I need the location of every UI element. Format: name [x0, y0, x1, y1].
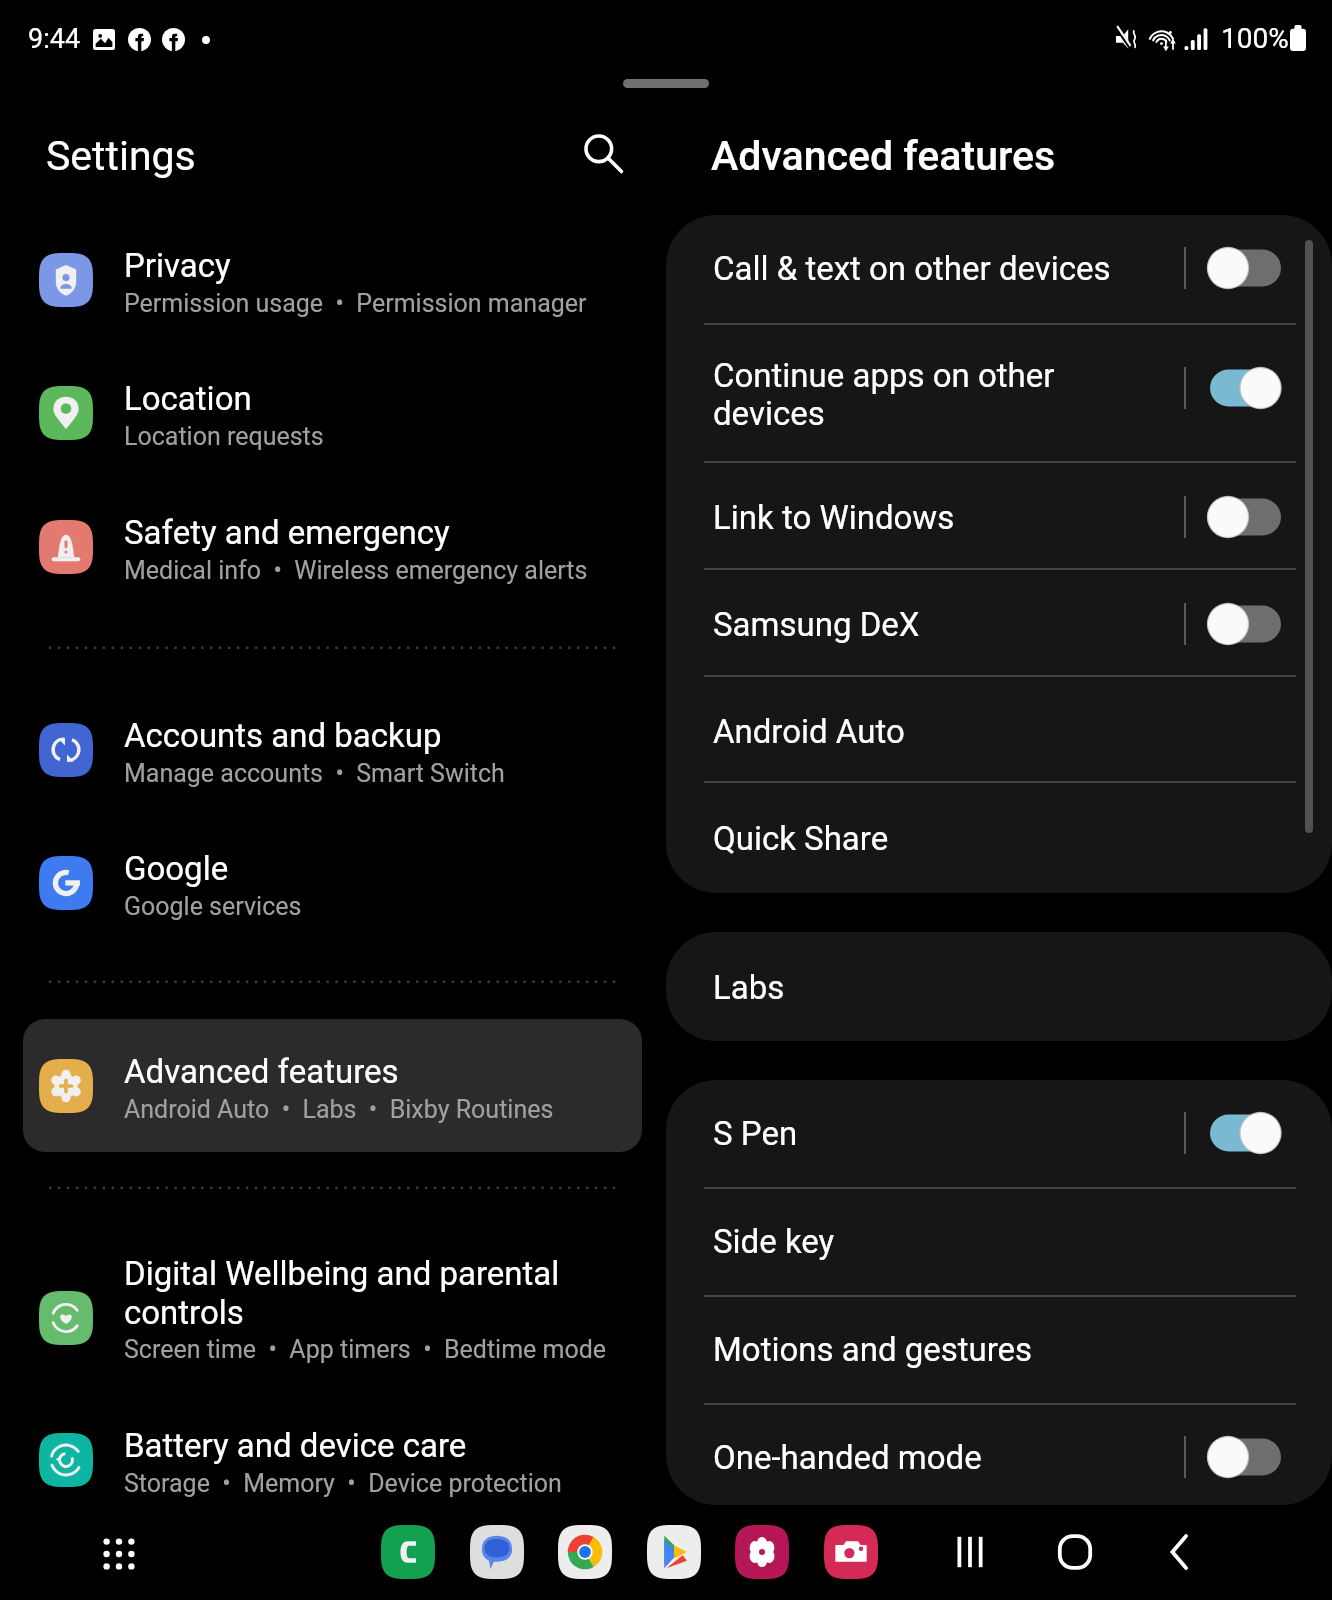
staticText: Safety and emergency	[124, 513, 450, 552]
staticText: S Pen	[713, 1114, 798, 1153]
staticText: Google services	[124, 892, 302, 921]
staticText: Samsung DeX	[713, 605, 920, 644]
button[interactable]	[824, 1525, 878, 1579]
staticText: Battery and device care	[124, 1426, 467, 1465]
staticText: Location requests	[124, 422, 324, 451]
staticText: 100%	[1221, 22, 1289, 55]
button[interactable]: Google	[0, 817, 666, 949]
staticText: Labs	[713, 968, 785, 1007]
staticText: Quick Share	[713, 819, 889, 858]
staticText: Android Auto	[713, 712, 905, 751]
staticText: controls	[124, 1293, 244, 1332]
button[interactable]: Search	[571, 121, 635, 185]
staticText: Privacy	[124, 246, 231, 285]
staticText: Storage • Memory • Device protection	[124, 1469, 562, 1498]
button[interactable]: Off	[1206, 242, 1284, 294]
staticText: Advanced features	[124, 1052, 399, 1091]
button[interactable]: Advanced features	[23, 1019, 642, 1152]
staticText: devices	[713, 394, 825, 433]
button[interactable]: Safety and emergency	[0, 481, 666, 613]
button[interactable]: Back	[1152, 1524, 1208, 1580]
button[interactable]: Samsung DeX	[666, 570, 1332, 678]
button[interactable]: On	[1206, 1107, 1284, 1159]
button[interactable]: Side key	[666, 1188, 1332, 1296]
staticText: Call & text on other devices	[713, 249, 1111, 288]
staticText: 9:44	[28, 23, 81, 55]
button[interactable]: Accounts and backup	[0, 684, 666, 816]
button[interactable]	[647, 1525, 701, 1579]
button[interactable]: Android Auto	[666, 678, 1332, 786]
button[interactable]: On	[1206, 362, 1284, 414]
button[interactable]: All apps	[91, 1526, 147, 1582]
button[interactable]: Location	[0, 347, 666, 479]
button[interactable]: Home	[1047, 1524, 1103, 1580]
button[interactable]: Continue apps on other	[666, 320, 1332, 456]
button[interactable]: Battery and device care	[0, 1394, 666, 1526]
button[interactable]: Call & text on other devices	[666, 214, 1332, 322]
button[interactable]: Off	[1206, 491, 1284, 543]
staticText: Google	[124, 849, 229, 888]
staticText: Link to Windows	[713, 498, 955, 537]
button[interactable]: S Pen	[666, 1079, 1332, 1187]
staticText: Android Auto • Labs • Bixby Routines	[124, 1095, 554, 1124]
staticText: Continue apps on other	[713, 356, 1055, 395]
button[interactable]	[381, 1525, 435, 1579]
staticText: Side key	[713, 1222, 835, 1261]
staticText: Settings	[46, 132, 196, 180]
staticText: Location	[124, 379, 252, 418]
button[interactable]	[558, 1525, 612, 1579]
staticText: Accounts and backup	[124, 716, 442, 755]
staticText: Permission usage • Permission manager	[124, 289, 587, 318]
button[interactable]: Motions and gestures	[666, 1296, 1332, 1404]
staticText: Digital Wellbeing and parental	[124, 1254, 560, 1293]
button[interactable]: One-handed mode	[666, 1403, 1332, 1511]
button[interactable]: Labs	[666, 934, 1332, 1042]
button[interactable]: Link to Windows	[666, 463, 1332, 571]
staticText: Advanced features	[711, 132, 1056, 180]
button[interactable]	[470, 1525, 524, 1579]
staticText: Motions and gestures	[713, 1330, 1033, 1369]
button[interactable]: Digital Wellbeing and parental	[0, 1232, 666, 1392]
staticText: Medical info • Wireless emergency alerts	[124, 556, 588, 585]
staticText: Manage accounts • Smart Switch	[124, 759, 505, 788]
button[interactable]: Privacy	[0, 214, 666, 346]
button[interactable]: Recents	[942, 1524, 998, 1580]
button[interactable]: Off	[1206, 598, 1284, 650]
button[interactable]	[735, 1525, 789, 1579]
staticText: Screen time • App timers • Bedtime mode	[124, 1335, 607, 1364]
button[interactable]: Off	[1206, 1431, 1284, 1483]
button[interactable]: Quick Share	[666, 785, 1332, 893]
staticText: One-handed mode	[713, 1438, 982, 1477]
